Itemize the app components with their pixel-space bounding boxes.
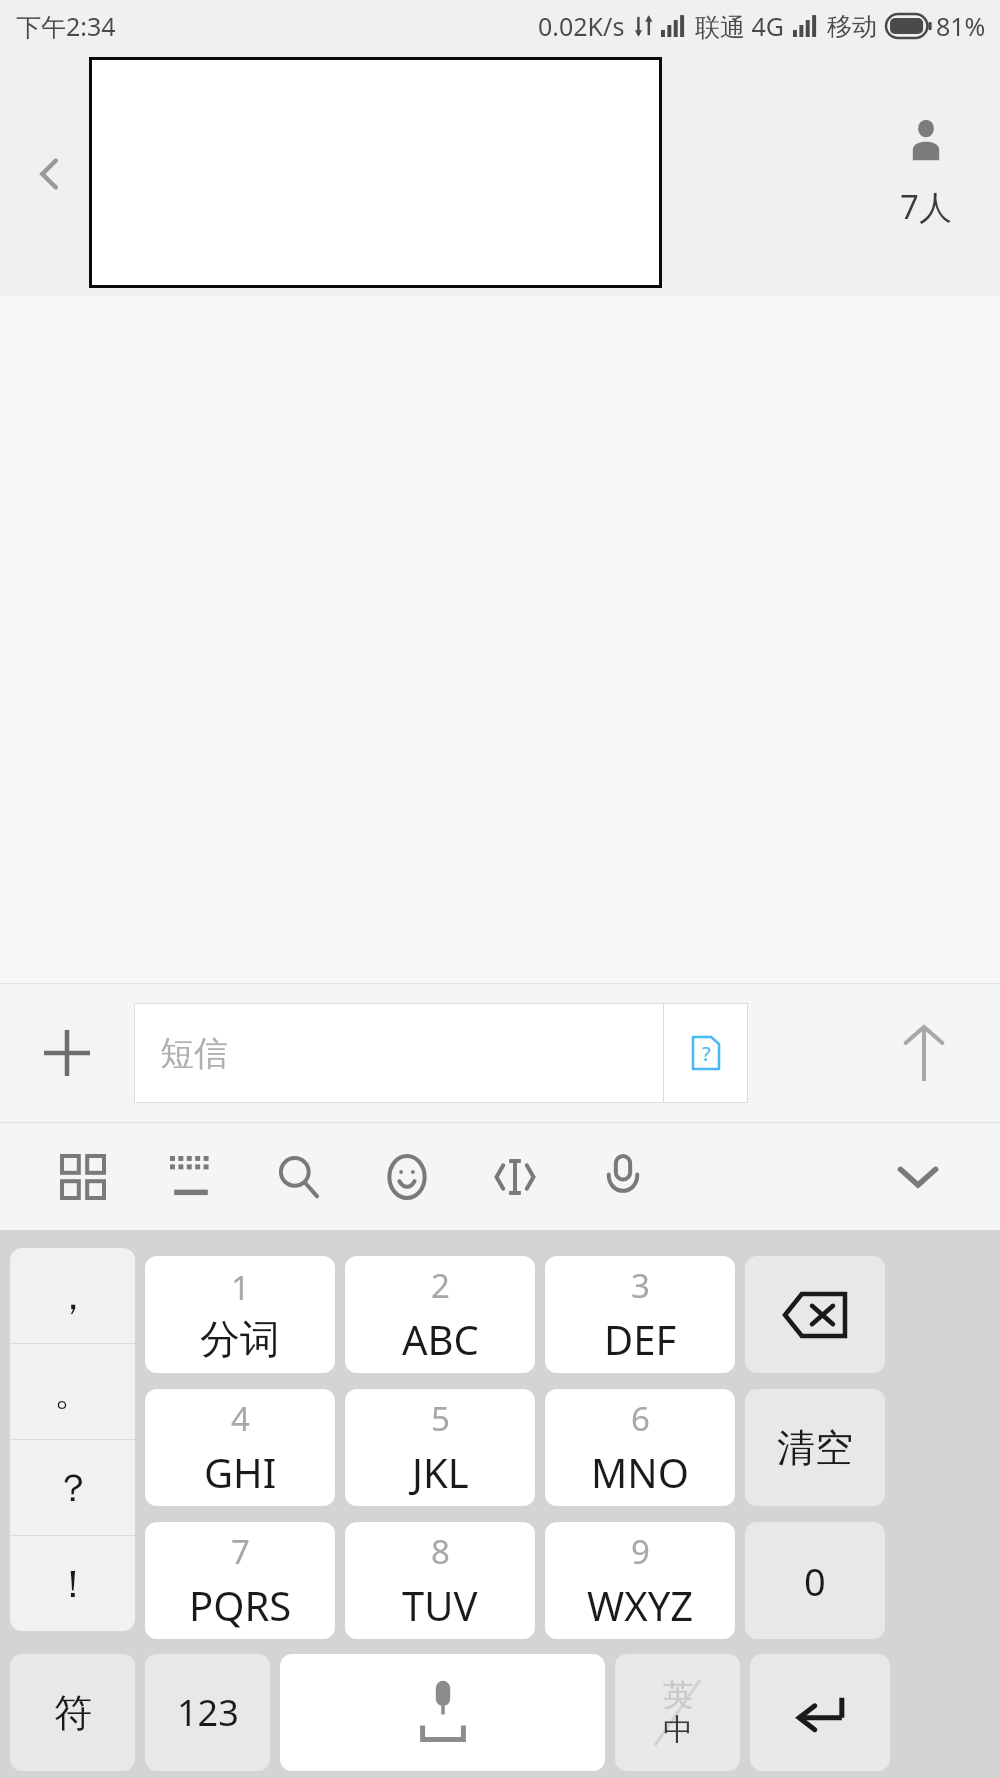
button[interactable]: Space [280,1654,605,1771]
staticText: 5 [431,1396,450,1441]
staticText: DEF [604,1312,677,1366]
button[interactable]: Add attachment [30,1016,104,1090]
button[interactable]: 。 [10,1344,135,1439]
button[interactable]: ， [10,1248,135,1343]
button[interactable]: Cursor move [478,1140,552,1214]
button[interactable]: 3 [545,1256,735,1373]
staticText: 下午2:34 [16,9,116,43]
staticText: TUV [402,1578,478,1632]
staticText: JKL [412,1445,469,1499]
staticText: 分词 [200,1314,280,1364]
button[interactable]: 短信 [134,1003,748,1103]
button[interactable]: Voice input [586,1140,660,1214]
staticText: MNO [591,1445,689,1499]
staticText: ， [54,1272,92,1320]
staticText: 3 [631,1263,650,1308]
staticText: 8 [431,1529,450,1574]
staticText: WXYZ [587,1578,694,1632]
button[interactable]: 7 [145,1522,335,1639]
button[interactable]: Panel [46,1140,120,1214]
button[interactable]: 0 [745,1522,885,1639]
staticText: 符 [54,1689,92,1737]
staticText: ？ [54,1464,92,1512]
staticText: ? [702,1040,711,1067]
button[interactable]: 5 [345,1389,535,1506]
button[interactable]: 4 [145,1389,335,1506]
staticText: 2 [431,1263,450,1308]
staticText: ABC [402,1312,479,1366]
staticText: 移动 [827,11,877,42]
button[interactable]: 9 [545,1522,735,1639]
button[interactable]: 6 [545,1389,735,1506]
staticText: 英 [663,1676,693,1714]
button[interactable]: 1 [145,1256,335,1373]
button[interactable]: Search [262,1140,336,1214]
staticText: PQRS [189,1578,292,1632]
button[interactable]: Backspace [745,1256,885,1373]
staticText: 0 [804,1555,826,1607]
button[interactable]: ？ [10,1440,135,1535]
staticText: 4 [231,1396,250,1441]
staticText: 短信 [160,1032,228,1075]
staticText: ！ [54,1560,92,1608]
button[interactable]: 8 [345,1522,535,1639]
staticText: 123 [177,1688,239,1737]
staticText: 7人 [900,184,952,229]
button[interactable]: Hide keyboard [884,1143,952,1211]
button[interactable]: ！ [10,1536,135,1631]
staticText: 9 [631,1529,650,1574]
button[interactable]: 清空 [745,1389,885,1506]
staticText: 81% [936,9,986,43]
button[interactable]: 7人 [892,110,960,237]
button[interactable]: Keyboard layout [154,1140,228,1214]
staticText: 联通 4G [695,9,785,43]
staticText: GHI [204,1445,277,1499]
button[interactable]: Emoji [370,1140,444,1214]
staticText: 0.02K/s [538,9,625,43]
button[interactable]: Send [884,1013,964,1093]
staticText: 。 [54,1368,92,1416]
staticText: 1 [231,1265,250,1310]
button[interactable]: Enter [750,1654,890,1771]
button[interactable]: 123 [145,1654,270,1771]
button[interactable]: 英 [615,1654,740,1771]
staticText: 中 [663,1711,693,1749]
staticText: 清空 [777,1424,853,1472]
staticText: 7 [231,1529,250,1574]
button[interactable]: 2 [345,1256,535,1373]
button[interactable]: Back [18,142,82,206]
staticText: 6 [631,1396,650,1441]
button[interactable]: 符 [10,1654,135,1771]
